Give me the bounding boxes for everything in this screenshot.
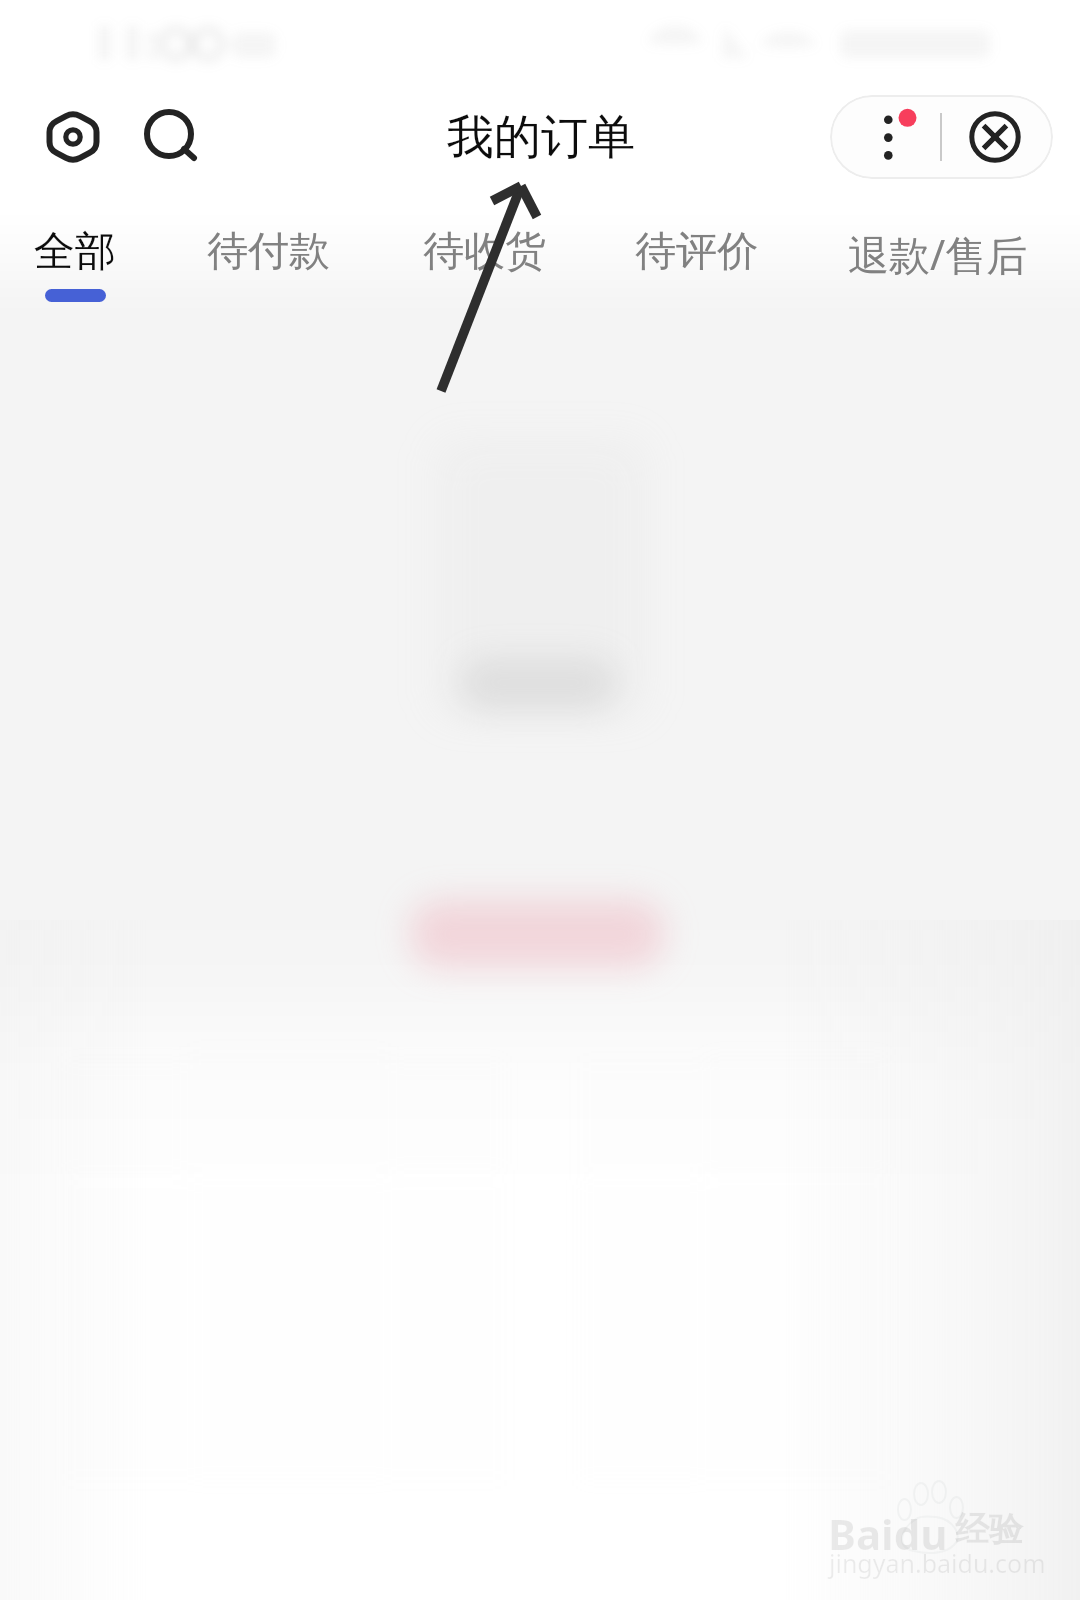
button[interactable]: More options [830,95,940,179]
staticText: 待收货 [423,226,546,278]
staticText: 待评价 [635,226,758,278]
button[interactable]: 待评价 [596,210,796,320]
button[interactable]: Scan [31,95,115,179]
button[interactable]: 待付款 [168,210,368,320]
button[interactable]: 全部 [0,210,175,320]
button[interactable]: Close [943,95,1053,179]
staticText: 经验 [955,1508,1023,1551]
staticText: 退款/售后 [848,226,1028,282]
staticText: 我的订单 [447,108,635,167]
button[interactable]: 退款/售后 [838,210,1038,320]
button[interactable]: Search [129,94,213,178]
staticText: 全部 [34,226,116,278]
staticText: jingyan.baidu.com [829,1546,1046,1580]
staticText: Baidu [828,1505,948,1562]
button[interactable]: 待收货 [384,210,584,320]
staticText: 待付款 [207,226,330,278]
